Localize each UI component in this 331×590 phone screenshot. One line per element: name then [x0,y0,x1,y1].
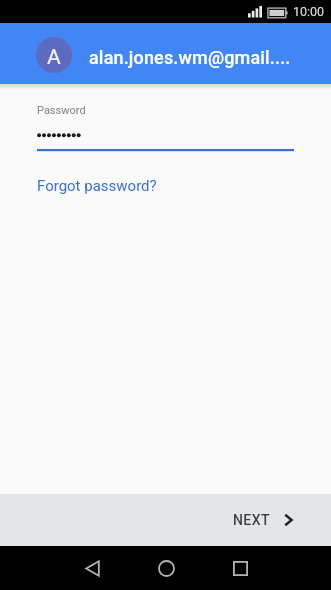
staticText: NEXT [233,512,270,528]
button[interactable]: NEXT [209,512,331,528]
button[interactable]: Recent apps [203,546,277,590]
staticText: Password [37,104,86,117]
button[interactable]: Home [129,546,203,590]
button[interactable]: Forgot password? [0,177,177,195]
button[interactable]: Back [55,546,129,590]
button[interactable]: Password field [0,104,331,152]
staticText: Forgot password? [37,177,157,195]
staticText: 10:00 [293,4,325,19]
button[interactable]: Account [36,37,72,73]
staticText: A [47,45,61,70]
staticText: alan.jones.wm@gmail.... [89,47,291,68]
